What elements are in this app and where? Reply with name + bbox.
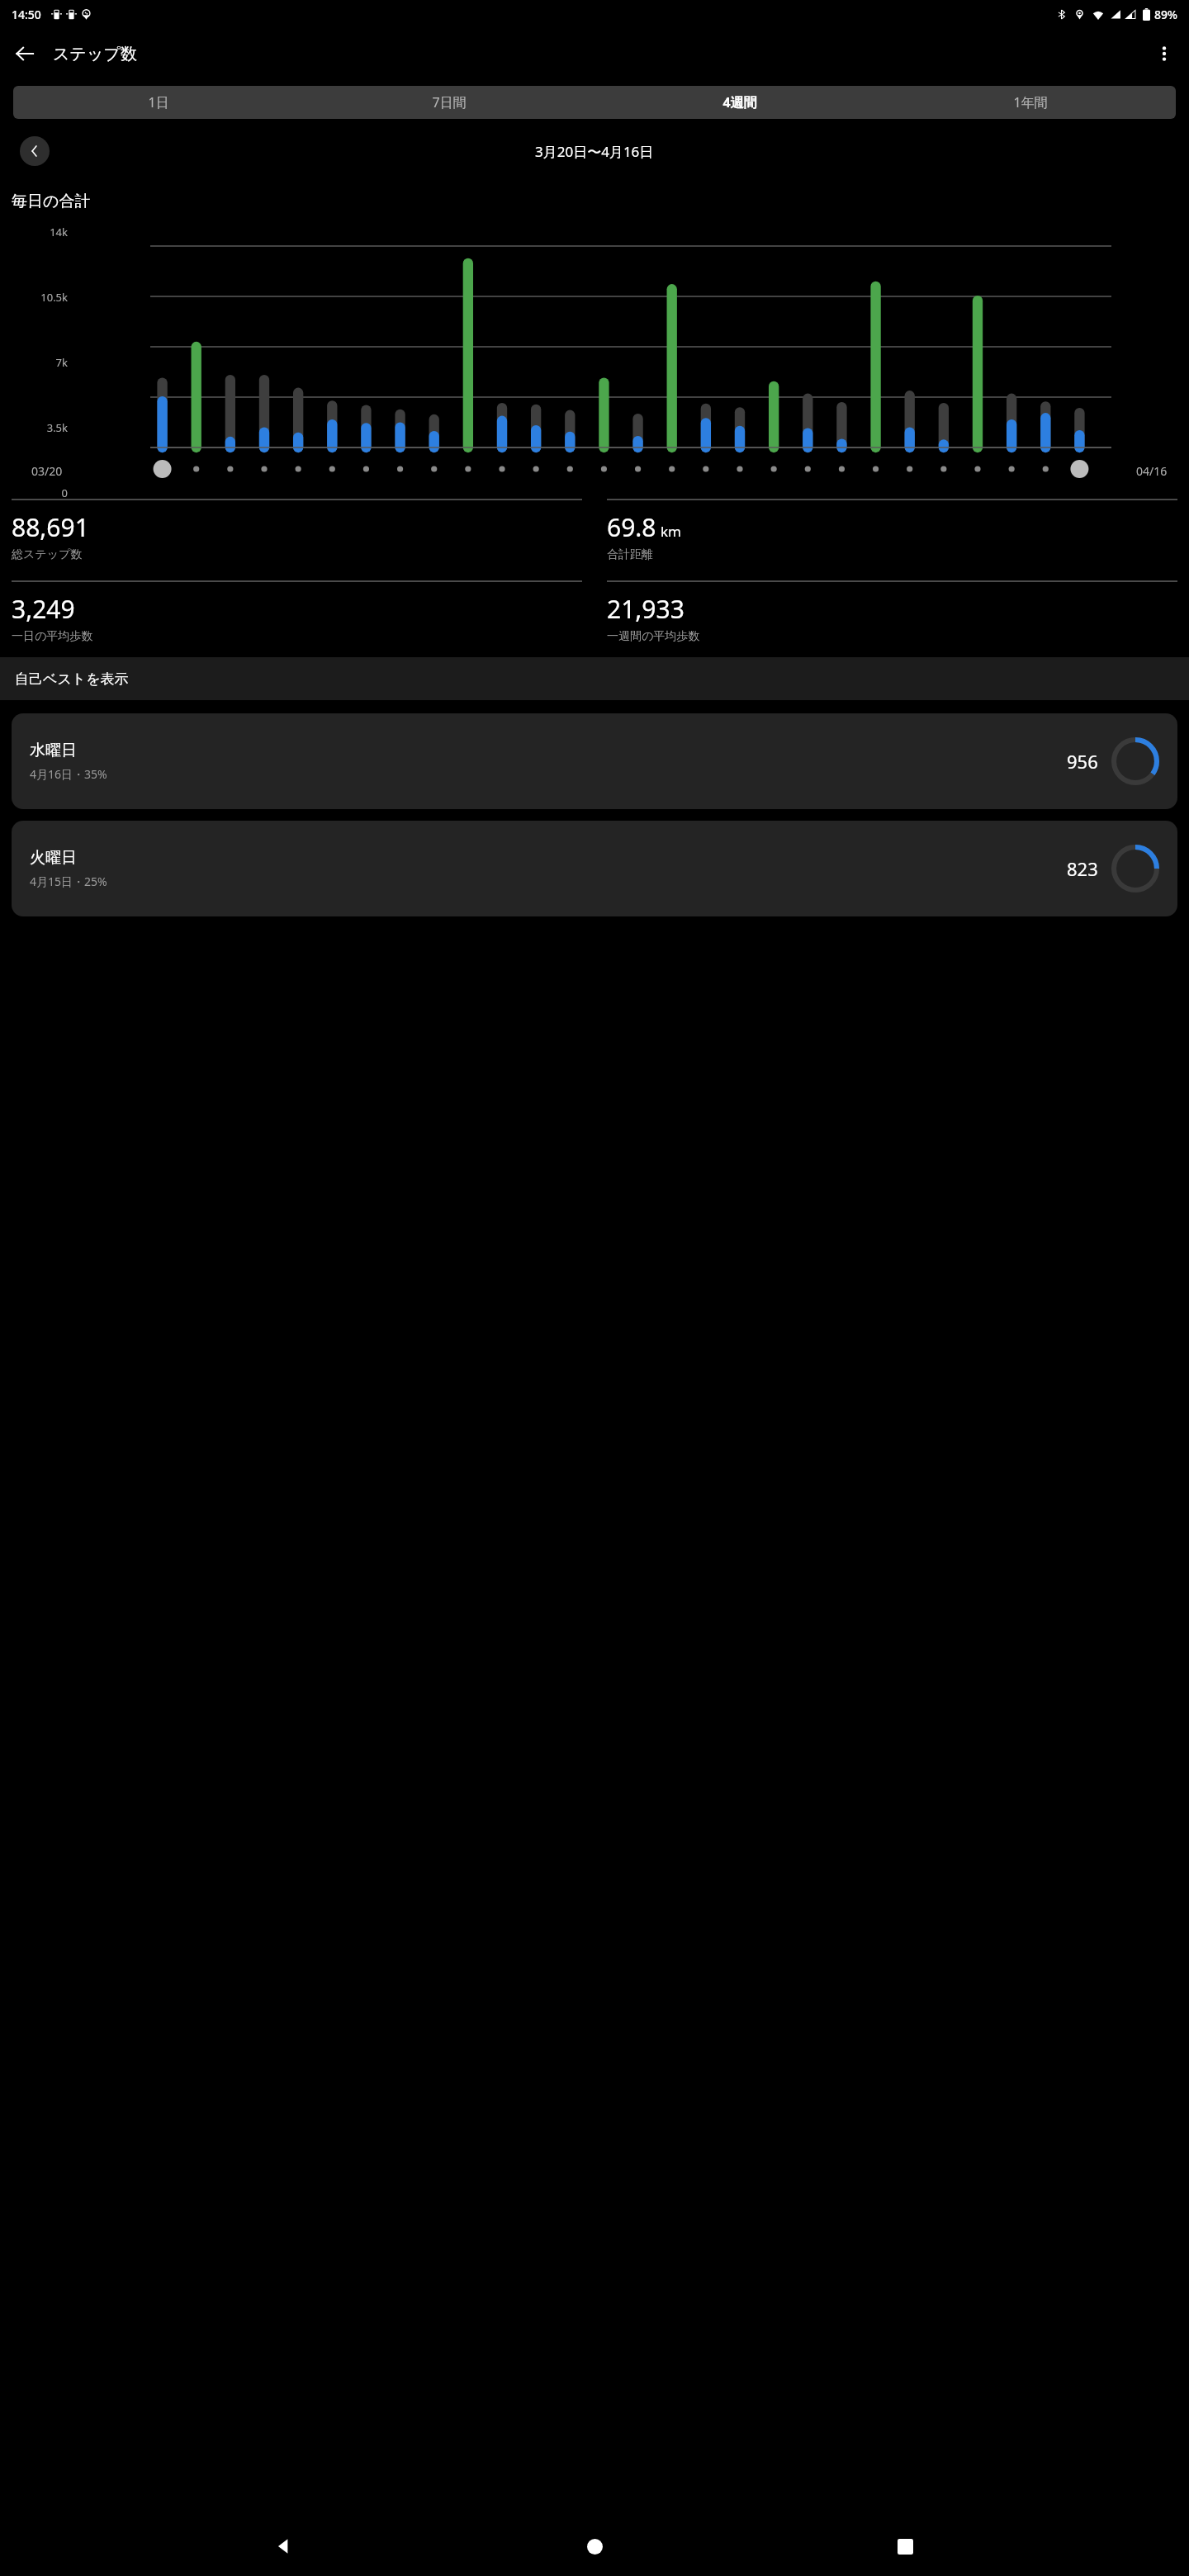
staticText: 3.5k	[46, 420, 68, 435]
button[interactable]: 水曜日	[12, 713, 1177, 809]
button[interactable]: 4週間	[594, 86, 885, 119]
staticText: 956	[1067, 749, 1098, 774]
staticText: ステップ数	[53, 44, 137, 64]
staticText: 7k	[55, 355, 68, 370]
staticText: 04/16	[1136, 463, 1168, 479]
staticText: 3月20日〜4月16日	[535, 142, 654, 161]
staticText: 一日の平均歩数	[12, 629, 93, 644]
button[interactable]: 1日	[13, 86, 304, 119]
staticText: 89%	[1154, 7, 1177, 22]
staticText: 一週間の平均歩数	[607, 629, 700, 644]
staticText: 03/20	[31, 463, 63, 479]
button[interactable]: 1年間	[885, 86, 1176, 119]
staticText: 0	[61, 485, 68, 500]
staticText: 毎日の合計	[12, 192, 91, 211]
staticText: 7日間	[432, 93, 467, 111]
button[interactable]: Previous period	[20, 136, 50, 166]
button[interactable]: Back	[258, 2520, 310, 2573]
staticText: 4月15日・25%	[30, 874, 107, 889]
staticText: 823	[1067, 856, 1098, 881]
staticText: 14k	[50, 225, 68, 239]
staticText: 1日	[148, 93, 169, 111]
staticText: 21,933	[607, 592, 685, 626]
staticText: 3,249	[12, 592, 75, 626]
staticText: 4週間	[722, 93, 757, 111]
staticText: 88,691	[12, 510, 89, 544]
button[interactable]: Back	[5, 34, 45, 73]
staticText: 69.8	[607, 510, 656, 544]
button[interactable]: Recent apps	[879, 2520, 931, 2573]
button[interactable]: Home	[568, 2520, 621, 2573]
staticText: km	[661, 522, 681, 541]
staticText: 自己ベストを表示	[15, 670, 129, 688]
button[interactable]: 7日間	[304, 86, 594, 119]
button[interactable]: More options	[1144, 34, 1184, 73]
staticText: 水曜日	[30, 741, 77, 760]
staticText: 合計距離	[607, 547, 653, 562]
staticText: 4月16日・35%	[30, 766, 107, 782]
staticText: 総ステップ数	[12, 547, 83, 562]
staticText: 1年間	[1013, 93, 1048, 111]
button[interactable]: 火曜日	[12, 821, 1177, 916]
staticText: 10.5k	[40, 290, 68, 305]
staticText: 14:50	[12, 7, 41, 22]
staticText: 火曜日	[30, 848, 77, 868]
